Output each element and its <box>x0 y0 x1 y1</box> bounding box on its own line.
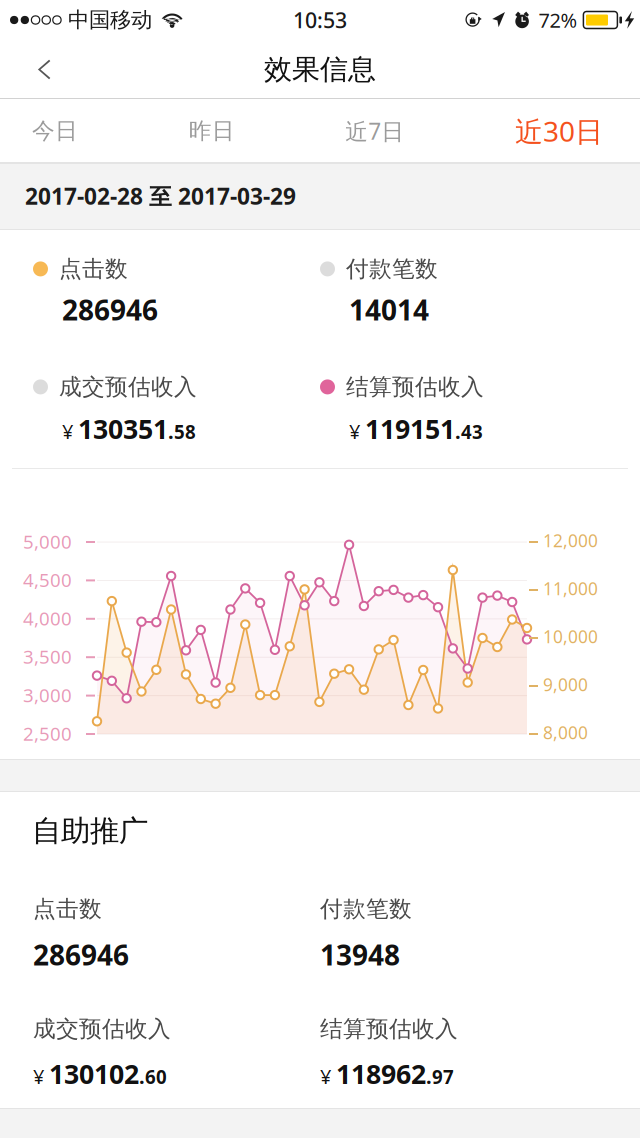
staticText: 近7日 <box>345 116 404 146</box>
staticText: 8,000 <box>543 721 588 744</box>
staticText: 付款笔数 <box>346 255 438 283</box>
staticText: 10:53 <box>293 6 347 34</box>
staticText: ¥ 130102.60 <box>33 1056 167 1091</box>
staticText: 成交预估收入 <box>33 1015 171 1043</box>
staticText: 成交预估收入 <box>59 373 197 401</box>
staticText: 5,000 <box>23 529 72 554</box>
staticText: 4,500 <box>23 567 72 592</box>
staticText: 效果信息 <box>264 52 376 87</box>
staticText: 中国移动 <box>68 7 152 33</box>
staticText: 72% <box>538 7 577 33</box>
staticText: 4,000 <box>23 606 72 631</box>
staticText: ¥ 130351.58 <box>62 411 196 446</box>
staticText: 昨日 <box>189 117 235 145</box>
button[interactable]: 今日 <box>32 99 78 163</box>
button[interactable]: 近7日 <box>345 99 404 163</box>
staticText: 14014 <box>349 291 429 328</box>
staticText: 点击数 <box>33 895 102 923</box>
staticText: 付款笔数 <box>320 895 412 923</box>
staticText: 9,000 <box>543 673 588 696</box>
staticText: 近30日 <box>515 112 603 150</box>
staticText: 结算预估收入 <box>320 1015 458 1043</box>
staticText: 11,000 <box>543 577 598 600</box>
button[interactable]: 近30日 <box>515 99 603 163</box>
staticText: 结算预估收入 <box>346 373 484 401</box>
staticText: 点击数 <box>59 255 128 283</box>
staticText: 3,500 <box>23 644 72 669</box>
staticText: 286946 <box>62 291 158 328</box>
staticText: 286946 <box>33 936 129 973</box>
staticText: 13948 <box>320 936 400 973</box>
staticText: 12,000 <box>543 529 598 552</box>
button[interactable]: 返回 <box>12 40 76 99</box>
staticText: ¥ 119151.43 <box>349 411 483 446</box>
staticText: 2017-02-28 至 2017-03-29 <box>25 181 296 211</box>
staticText: 自助推广 <box>32 813 148 849</box>
staticText: 2,500 <box>23 721 72 746</box>
button[interactable]: 昨日 <box>189 99 235 163</box>
staticText: 今日 <box>32 117 78 145</box>
staticText: 3,000 <box>23 683 72 707</box>
staticText: 10,000 <box>543 625 598 648</box>
staticText: ¥ 118962.97 <box>320 1056 454 1091</box>
